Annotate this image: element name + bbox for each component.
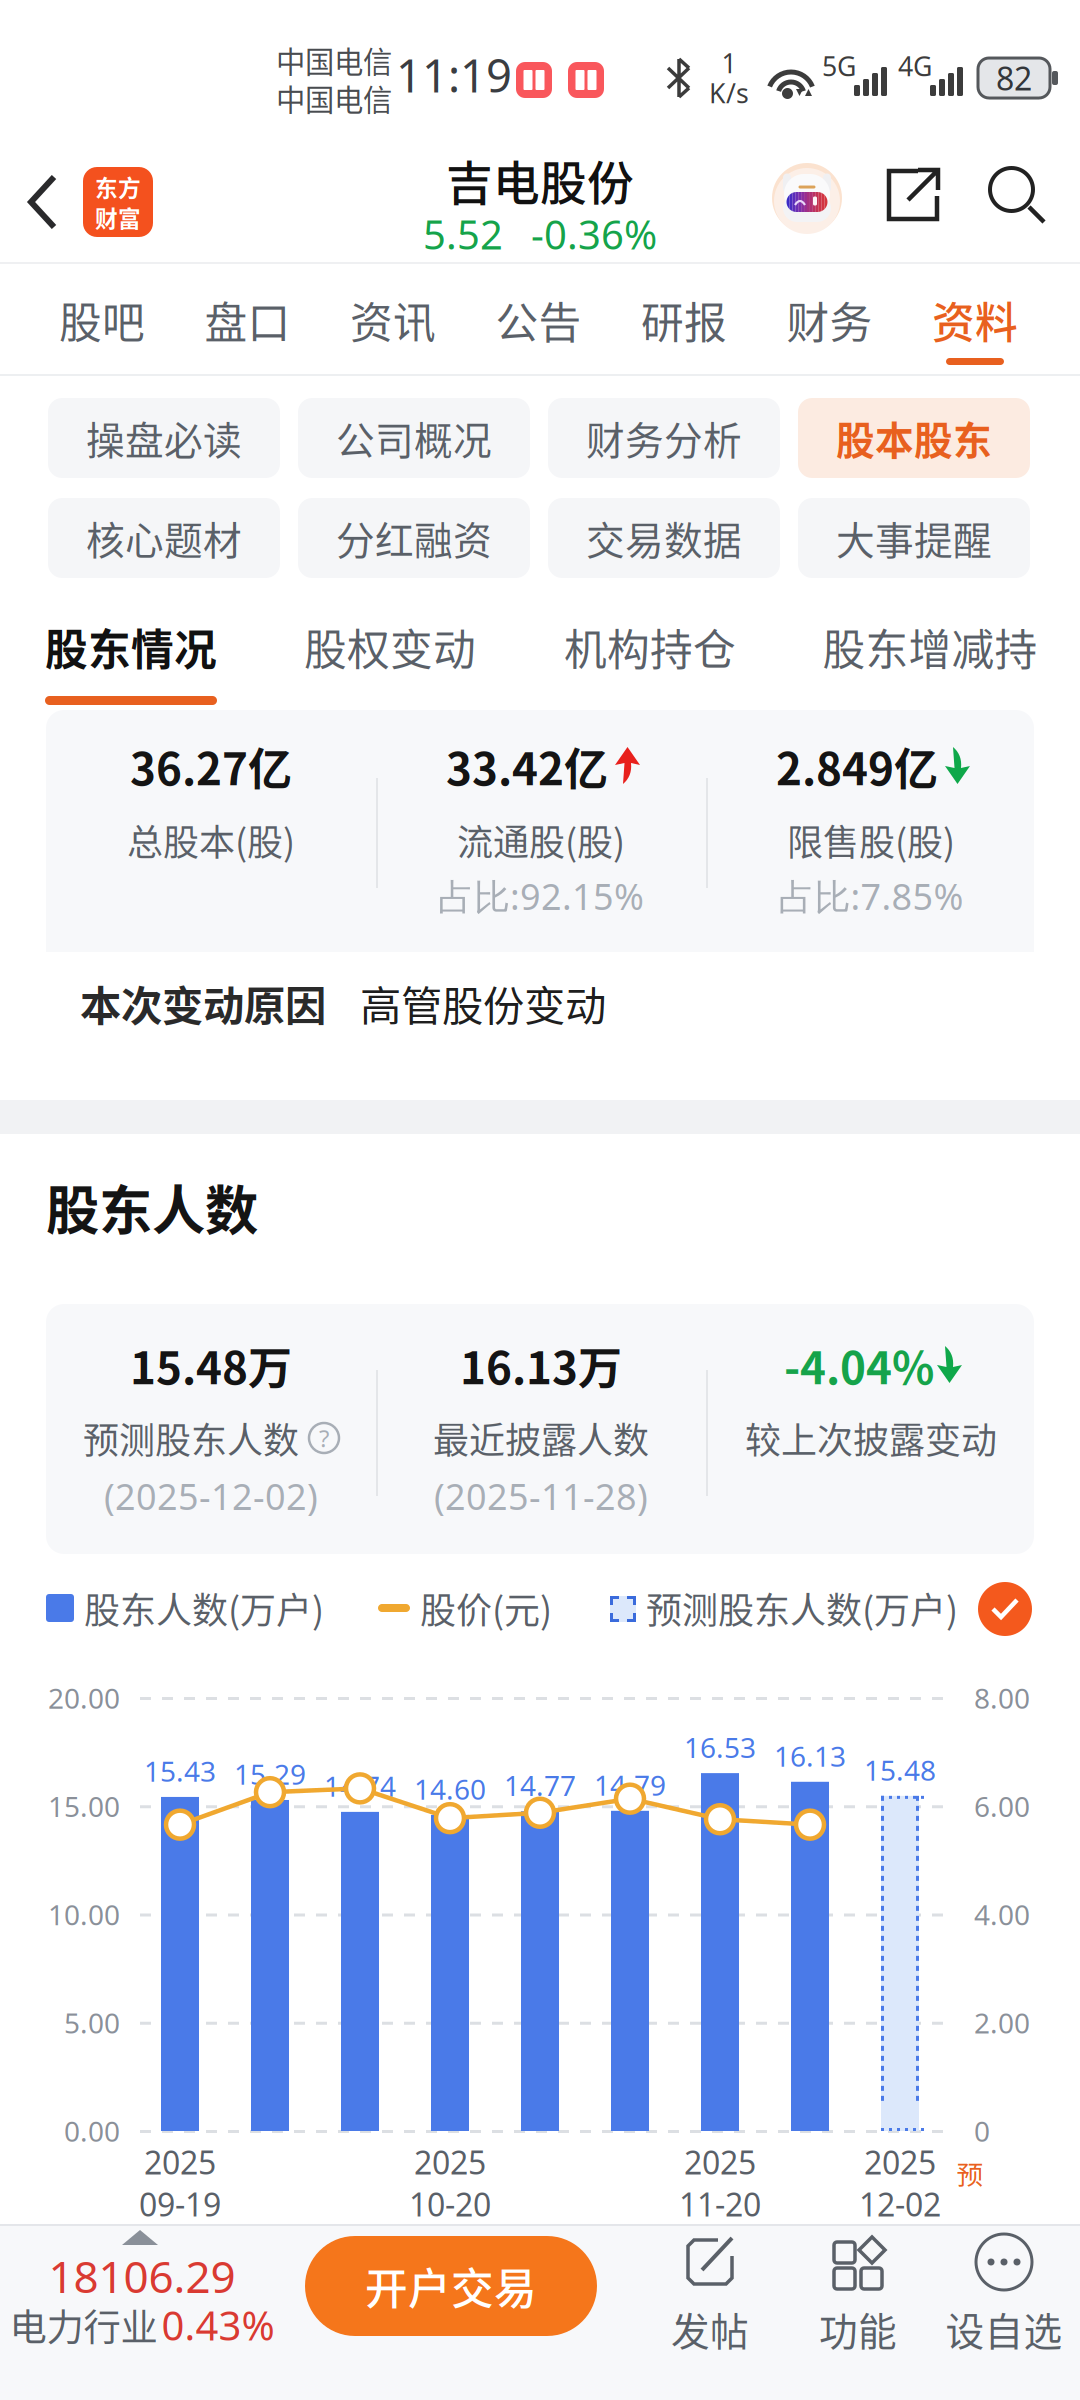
staticText: 2025 xyxy=(144,2140,216,2184)
staticText: 占比:7.85% xyxy=(778,871,963,920)
staticText: 15.43 xyxy=(144,1752,216,1790)
staticText: (2025-11-28) xyxy=(434,1471,648,1520)
staticText: 4.00 xyxy=(974,1895,1030,1933)
staticText: 2025 xyxy=(414,2140,486,2184)
staticText: 限售股(股) xyxy=(787,814,955,866)
staticText: 资料 xyxy=(932,289,1018,351)
staticText: 15.48万 xyxy=(130,1333,292,1397)
staticText: 33.42亿 xyxy=(446,734,608,798)
staticText: 最近披露人数 xyxy=(433,1412,649,1464)
staticText: 16.13万 xyxy=(460,1333,622,1397)
staticText: K/s xyxy=(709,75,749,111)
staticText: 股东人数(万户) xyxy=(84,1582,324,1634)
staticText: 研报 xyxy=(641,289,727,351)
staticText: 中国电信 xyxy=(276,77,392,119)
staticText: -4.04% xyxy=(784,1333,934,1397)
staticText: 预测股东人数 xyxy=(83,1412,299,1464)
staticText: 财富 xyxy=(95,201,141,234)
staticText: (2025-12-02) xyxy=(104,1471,318,1520)
staticText: 5G xyxy=(822,48,856,84)
staticText: 发帖 xyxy=(671,2301,749,2357)
staticText: 0 xyxy=(974,2112,990,2150)
staticText: 公司概况 xyxy=(336,410,492,466)
staticText: 股价(元) xyxy=(420,1582,552,1634)
staticText: 较上次披露变动 xyxy=(745,1412,997,1464)
staticText: 14.60 xyxy=(414,1770,486,1808)
staticText: 电力行业 xyxy=(9,2298,157,2352)
staticText: 设自选 xyxy=(945,2301,1062,2357)
staticText: 股吧 xyxy=(59,289,145,351)
staticText: 15.00 xyxy=(48,1787,120,1825)
staticText: 14.79 xyxy=(594,1766,666,1804)
staticText: 财务分析 xyxy=(586,410,742,466)
staticText: 机构持仓 xyxy=(564,616,736,678)
staticText: 14.77 xyxy=(504,1766,576,1804)
staticText: 36.27亿 xyxy=(130,734,292,798)
staticText: 11-20 xyxy=(679,2182,761,2226)
staticText: 功能 xyxy=(819,2301,897,2357)
staticText: 预 xyxy=(956,2154,983,2192)
staticText: 股东情况 xyxy=(45,616,217,678)
staticText: 资讯 xyxy=(350,289,436,351)
staticText: -0.36% xyxy=(531,207,657,261)
staticText: 8.00 xyxy=(974,1679,1030,1717)
staticText: 分红融资 xyxy=(336,510,492,566)
staticText: 14.74 xyxy=(324,1767,396,1805)
staticText: 0.43% xyxy=(161,2298,274,2352)
staticText: 股东增减持 xyxy=(822,616,1037,678)
staticText: 82 xyxy=(996,56,1032,100)
staticText: 总股本(股) xyxy=(127,814,295,866)
staticText: 东方 xyxy=(95,170,141,203)
staticText: 4G xyxy=(898,48,932,84)
staticText: 18106.29 xyxy=(48,2246,235,2306)
staticText: 股东人数 xyxy=(46,1168,258,1246)
button[interactable]: 18106.29 xyxy=(0,0,292,172)
button[interactable]: 开户交易 xyxy=(0,0,292,100)
staticText: 2.849亿 xyxy=(776,734,938,798)
staticText: 公告 xyxy=(495,289,581,351)
staticText: 交易数据 xyxy=(586,510,742,566)
staticText: 股本股东 xyxy=(836,410,992,466)
staticText: 盘口 xyxy=(204,289,290,351)
staticText: 10.00 xyxy=(48,1895,120,1933)
staticText: 流通股(股) xyxy=(457,814,625,866)
staticText: 15.29 xyxy=(234,1755,306,1793)
staticText: 10-20 xyxy=(409,2182,491,2226)
staticText: 09-19 xyxy=(139,2182,221,2226)
staticText: 财务 xyxy=(786,289,872,351)
staticText: 核心题材 xyxy=(86,510,242,566)
staticText: 6.00 xyxy=(974,1787,1030,1825)
staticText: 吉电股份 xyxy=(446,146,634,214)
staticText: 开户交易 xyxy=(365,2255,537,2317)
staticText: 1 xyxy=(721,45,736,81)
staticText: 12-02 xyxy=(859,2182,941,2226)
